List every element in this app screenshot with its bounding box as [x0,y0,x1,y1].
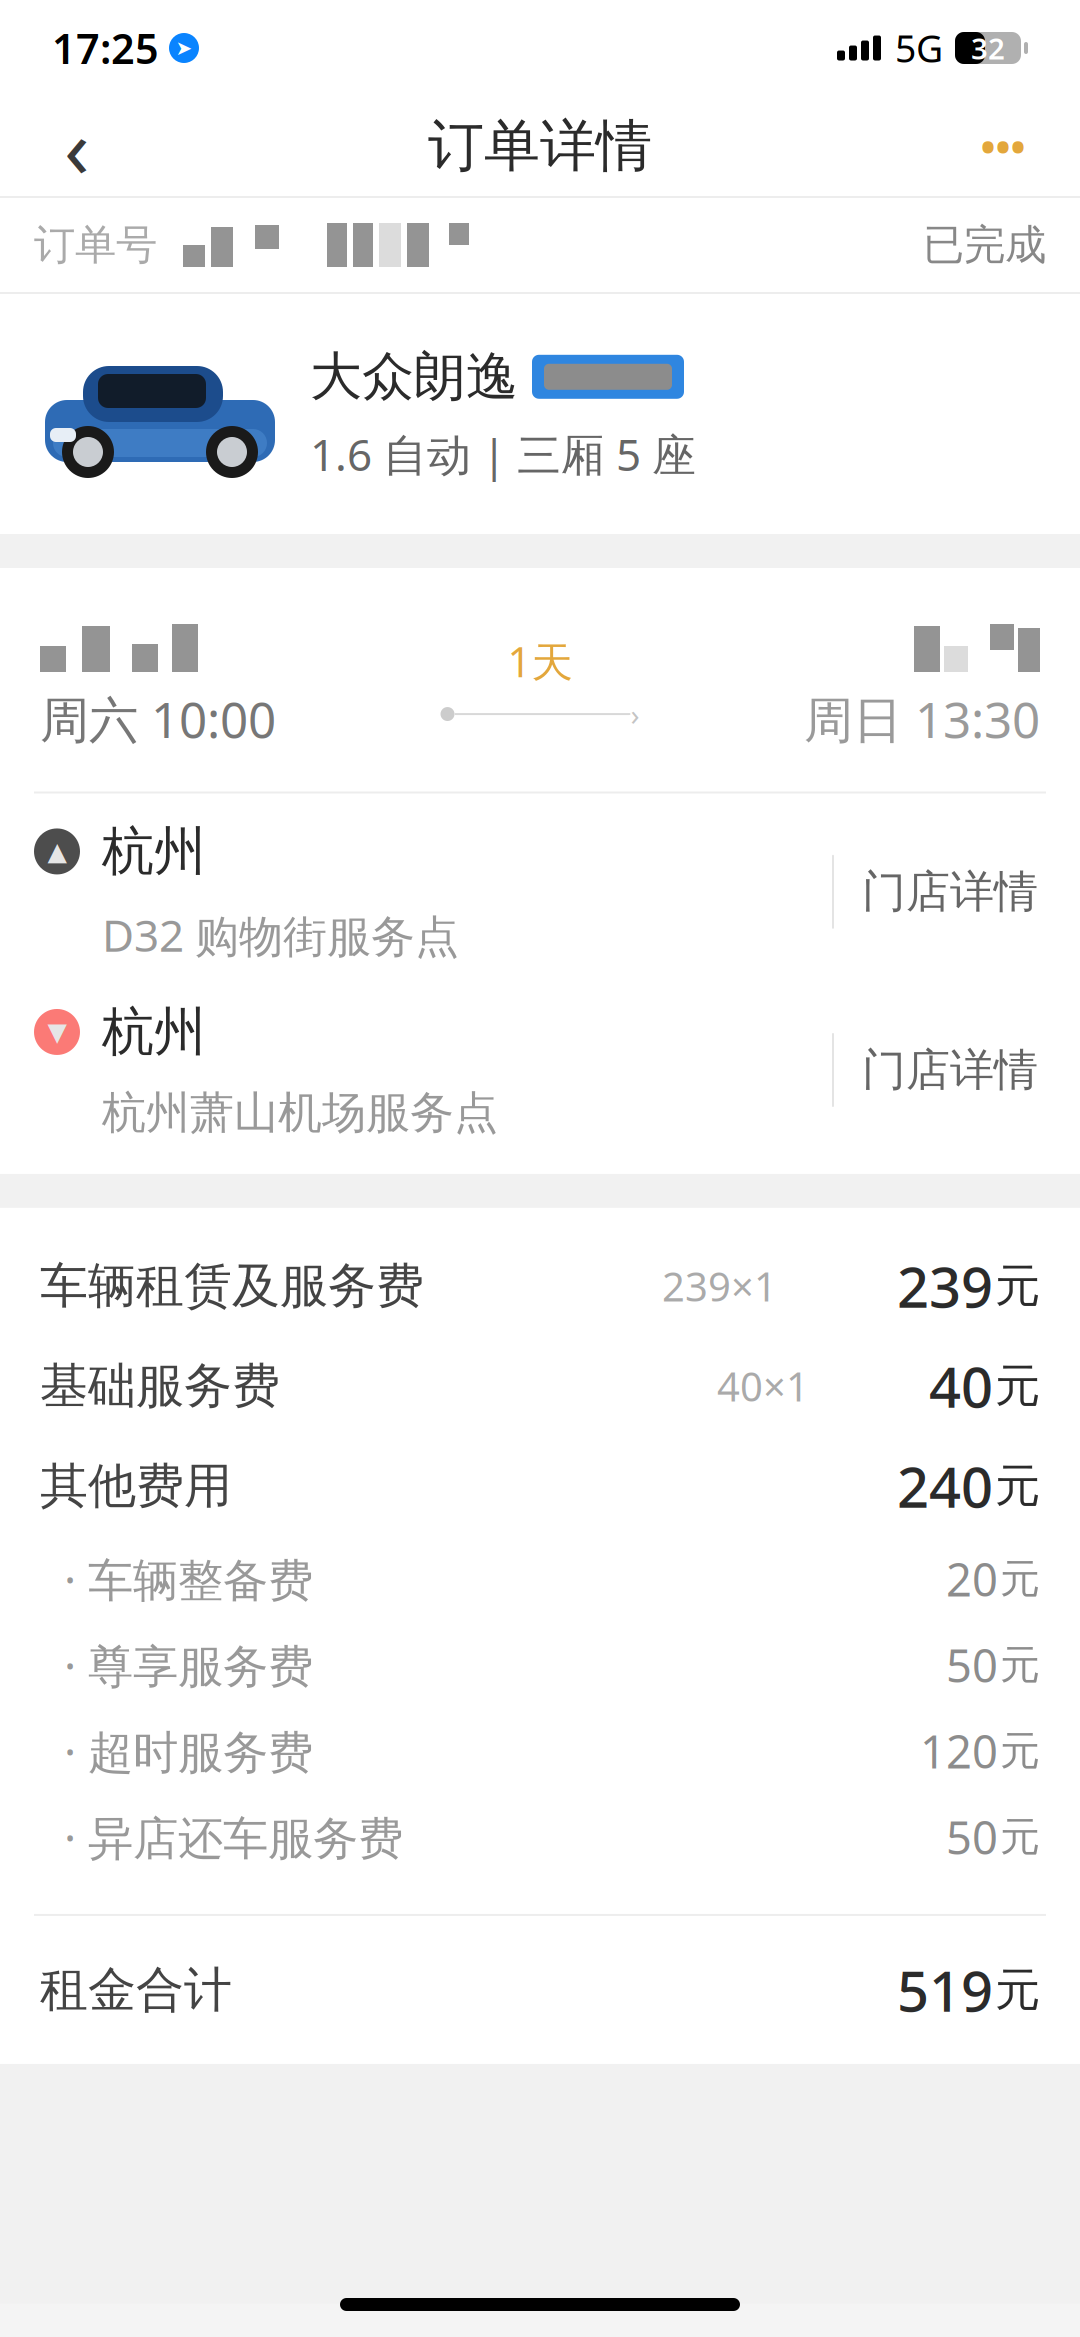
staticText: 40×1 [717,1359,809,1412]
staticText: 周六 10:00 [40,686,276,751]
staticText: 240 [897,1449,993,1523]
staticText: 基础服务费 [40,1356,280,1415]
staticText: 32 [971,28,1005,67]
staticText: · 超时服务费 [40,1721,313,1781]
staticText: · 异店还车服务费 [40,1807,403,1867]
staticText: 元 [1000,1554,1040,1603]
staticText: · 尊享服务费 [40,1635,313,1695]
button[interactable]: 返回 [22,98,132,194]
button[interactable]: 门店详情 [834,1015,1066,1125]
staticText: 已完成 [923,220,1046,270]
staticText: 杭州 [102,819,206,883]
button[interactable]: 更多 [948,98,1058,194]
staticText: › [630,695,639,734]
staticText: 杭州 [102,1000,206,1064]
staticText: ▲ [47,837,66,866]
staticText: 元 [995,1358,1040,1414]
staticText: 5G [895,23,943,73]
staticText: D32 购物街服务点 [102,905,459,964]
staticText: 元 [995,1258,1040,1314]
staticText: 元 [1000,1812,1040,1861]
staticText: 其他费用 [40,1456,232,1515]
staticText: 元 [995,1962,1040,2018]
staticText: 元 [1000,1640,1040,1689]
staticText: 周日 13:30 [804,686,1040,751]
staticText: 17:25 [52,21,159,75]
staticText: 120 [920,1721,998,1781]
staticText: 1天 [507,634,572,689]
staticText: 车辆租赁及服务费 [40,1256,424,1315]
staticText: 50 [946,1807,998,1867]
staticText: 50 [946,1635,998,1695]
staticText: 订单号 [34,220,157,270]
staticText: 1.6 自动 | 三厢 5 座 [310,425,696,483]
staticText: 门店详情 [862,1043,1038,1097]
staticText: 租金合计 [40,1960,232,2019]
staticText: ‹ [64,91,90,201]
button[interactable]: 门店详情 [834,837,1066,947]
staticText: 40 [929,1349,993,1423]
staticText: ➤ [175,37,192,59]
staticText: 大众朗逸 [310,345,518,409]
staticText: 519 [897,1953,993,2027]
staticText: · 车辆整备费 [40,1549,313,1609]
staticText: 杭州萧山机场服务点 [102,1086,498,1140]
staticText: 订单详情 [428,112,652,180]
staticText: 20 [946,1549,998,1609]
staticText: 239×1 [662,1259,777,1312]
staticText: 239 [897,1249,993,1323]
staticText: 元 [995,1458,1040,1514]
staticText: 元 [1000,1726,1040,1775]
staticText: ▼ [47,1018,66,1046]
staticText: 门店详情 [862,865,1038,919]
staticText: ••• [980,119,1025,172]
